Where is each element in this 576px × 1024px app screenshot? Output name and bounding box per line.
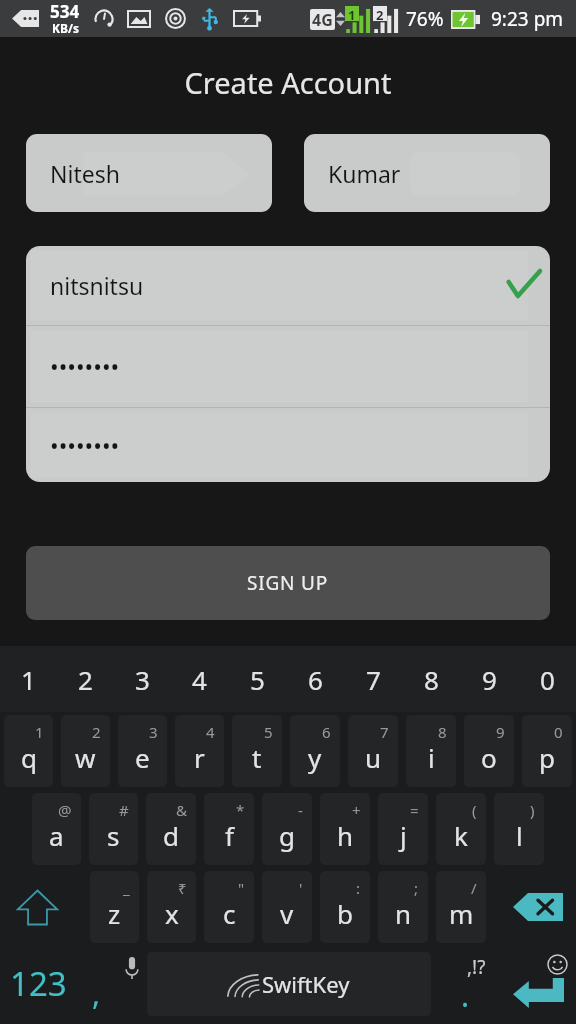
staticText: p [539, 740, 555, 775]
button[interactable]: Backspace [490, 868, 576, 946]
staticText: 9 [482, 662, 497, 697]
button[interactable]: Kumar [304, 134, 550, 212]
button[interactable]: Enter [490, 946, 576, 1024]
staticText: . [461, 975, 470, 1016]
staticText: # [119, 800, 129, 820]
button[interactable]: ' [262, 871, 312, 943]
button[interactable]: 1 [0, 646, 57, 712]
button[interactable]: / [436, 871, 486, 943]
button[interactable]: 123 [0, 946, 80, 1024]
button[interactable]: 0 [518, 646, 576, 712]
button[interactable]: 7 [344, 646, 402, 712]
button[interactable]: . [431, 946, 490, 1024]
button[interactable]: 8 [406, 715, 456, 787]
button[interactable]: 1 [4, 715, 53, 787]
staticText: 1 [35, 722, 44, 742]
staticText: 76% [406, 6, 444, 32]
staticText: s [107, 818, 120, 853]
button[interactable]: 4 [175, 715, 224, 787]
button[interactable]: ; [378, 871, 428, 943]
button[interactable]: + [320, 793, 370, 865]
button[interactable]: Shift [0, 868, 86, 946]
button[interactable]: * [204, 793, 254, 865]
button[interactable]: = [378, 793, 428, 865]
staticText: 8 [438, 722, 447, 742]
staticText: 0 [540, 662, 555, 697]
staticText: ,!? [467, 954, 486, 980]
staticText: / [471, 878, 477, 898]
button[interactable]: 5 [228, 646, 286, 712]
button[interactable]: 9 [460, 646, 518, 712]
staticText: y [308, 740, 322, 775]
staticText: 6 [308, 662, 323, 697]
button[interactable]: 2 [57, 646, 114, 712]
button[interactable]: SIGN UP [26, 546, 550, 620]
staticText: 5 [264, 722, 273, 742]
staticText: 8 [424, 662, 439, 697]
button[interactable]: ) [494, 793, 544, 865]
staticText: , [92, 973, 101, 1014]
staticText: = [410, 800, 419, 820]
button[interactable]: 4 [171, 646, 228, 712]
button[interactable]: ( [436, 793, 486, 865]
staticText: •••••••• [50, 430, 120, 461]
staticText: z [108, 896, 121, 931]
staticText: 9 [496, 722, 505, 742]
staticText: 2 [78, 662, 93, 697]
button[interactable]: : [320, 871, 370, 943]
button[interactable]: ₹ [147, 871, 196, 943]
staticText: 1 [21, 662, 36, 697]
button[interactable]: 3 [118, 715, 167, 787]
button[interactable]: nitsnitsu [26, 246, 550, 325]
staticText: a [49, 818, 64, 853]
staticText: ; [414, 878, 419, 898]
staticText: 4G [312, 9, 333, 30]
staticText: 3 [135, 662, 150, 697]
button[interactable]: 7 [348, 715, 398, 787]
staticText: 7 [366, 662, 381, 697]
staticText: 2 [376, 6, 384, 21]
button[interactable]: 8 [402, 646, 460, 712]
button[interactable]: & [146, 793, 196, 865]
staticText: ) [530, 800, 535, 820]
staticText: - [298, 800, 303, 820]
button[interactable]: 3 [114, 646, 171, 712]
button[interactable]: Comma and voice input [80, 946, 147, 1024]
button[interactable]: @ [32, 793, 81, 865]
button[interactable]: _ [90, 871, 139, 943]
staticText: k [454, 818, 468, 853]
button[interactable]: Nitesh [26, 134, 272, 212]
button[interactable]: 9 [464, 715, 514, 787]
button[interactable]: 6 [290, 715, 340, 787]
staticText: @ [58, 800, 72, 820]
button[interactable]: •••••••• [26, 326, 550, 407]
staticText: i [428, 740, 435, 775]
button[interactable]: 5 [232, 715, 282, 787]
button[interactable]: 6 [286, 646, 344, 712]
staticText: SIGN UP [247, 570, 329, 596]
staticText: Kumar [328, 158, 401, 189]
staticText: KB/s [52, 20, 79, 34]
staticText: 2 [92, 722, 101, 742]
button[interactable]: 2 [61, 715, 110, 787]
staticText: g [279, 818, 295, 853]
staticText: r [194, 740, 205, 775]
staticText: x [165, 896, 179, 931]
staticText: 1 [348, 6, 356, 21]
button[interactable]: # [89, 793, 138, 865]
staticText: 6 [322, 722, 331, 742]
staticText: 534 [50, 0, 80, 23]
button[interactable]: - [262, 793, 312, 865]
staticText: 0 [554, 722, 563, 742]
button[interactable]: " [204, 871, 254, 943]
button[interactable]: 0 [522, 715, 572, 787]
staticText: " [238, 878, 245, 898]
staticText: •••••••• [50, 351, 120, 382]
staticText: Create Account [0, 63, 576, 102]
staticText: c [223, 896, 236, 931]
staticText: e [135, 740, 150, 775]
staticText: n [395, 896, 412, 931]
button[interactable]: •••••••• [26, 408, 550, 482]
button[interactable]: SwiftKey [147, 952, 431, 1016]
staticText: v [280, 896, 294, 931]
